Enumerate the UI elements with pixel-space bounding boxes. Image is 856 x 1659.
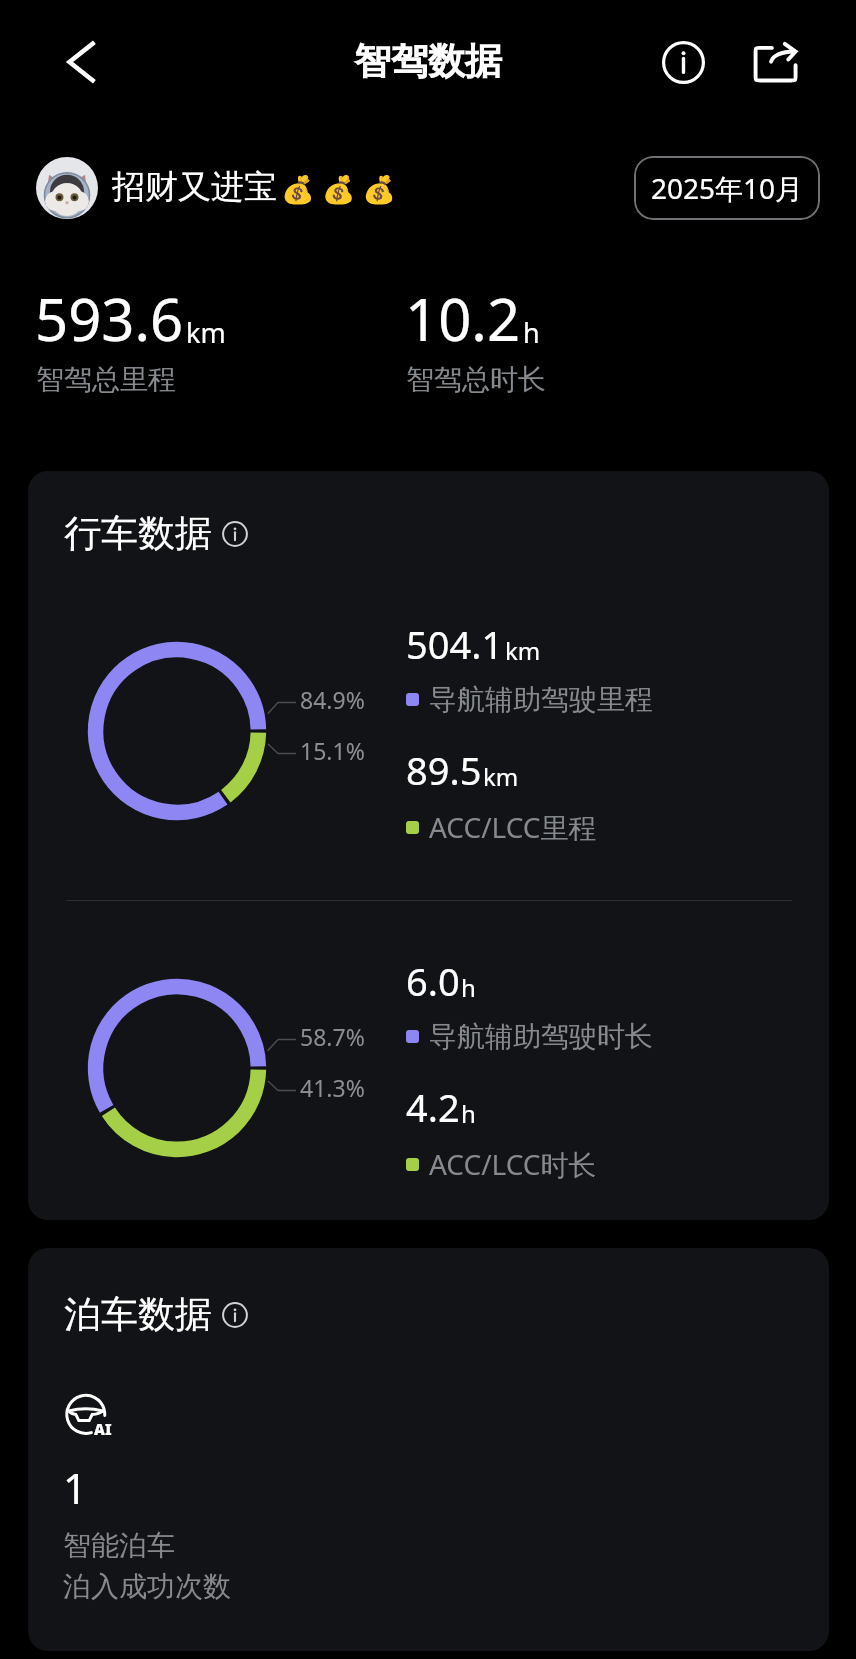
staticText: ACC/LCC里程 xyxy=(429,808,597,846)
staticText: 泊车数据 xyxy=(64,1291,212,1338)
button[interactable]: Back xyxy=(47,29,113,95)
button[interactable]: 593.6 xyxy=(35,279,365,391)
staticText: km xyxy=(186,314,226,351)
staticText: 504.1 xyxy=(406,618,504,670)
button[interactable]: Info xyxy=(650,29,716,95)
staticText: h xyxy=(461,971,476,1004)
staticText: 15.1% xyxy=(300,735,365,766)
staticText: AI xyxy=(94,1419,112,1439)
staticText: 智驾总时长 xyxy=(406,362,546,395)
staticText: 招财又进宝 xyxy=(112,166,277,208)
button[interactable]: Info xyxy=(216,515,254,553)
staticText: 💰 💰 💰 xyxy=(281,170,396,207)
staticText: 84.9% xyxy=(300,684,365,715)
staticText: 1 xyxy=(63,1459,88,1516)
staticText: km xyxy=(483,760,519,793)
staticText: 4.2 xyxy=(406,1081,460,1133)
button[interactable]: 2025年10月 xyxy=(634,156,820,220)
staticText: 10.2 xyxy=(405,279,521,358)
button[interactable]: Share xyxy=(741,26,807,92)
staticText: 行车数据 xyxy=(64,510,212,557)
staticText: ACC/LCC时长 xyxy=(429,1145,597,1183)
staticText: h xyxy=(461,1097,476,1130)
staticText: 智驾数据 xyxy=(354,38,502,85)
staticText: 58.7% xyxy=(300,1021,365,1052)
staticText: 导航辅助驾驶时长 xyxy=(429,1019,653,1054)
staticText: 导航辅助驾驶里程 xyxy=(429,682,653,717)
staticText: 智能泊车 xyxy=(63,1528,175,1563)
staticText: 2025年10月 xyxy=(651,169,804,207)
button[interactable]: 10.2 xyxy=(405,279,735,391)
staticText: km xyxy=(505,634,541,667)
button[interactable]: Profile avatar xyxy=(36,157,98,219)
staticText: 41.3% xyxy=(300,1072,365,1103)
staticText: 智驾总里程 xyxy=(36,362,176,395)
staticText: 泊入成功次数 xyxy=(63,1569,231,1604)
staticText: 593.6 xyxy=(35,279,184,358)
button[interactable]: Info xyxy=(216,1296,254,1334)
staticText: 89.5 xyxy=(406,744,482,796)
staticText: h xyxy=(523,314,540,351)
staticText: 6.0 xyxy=(406,955,460,1007)
